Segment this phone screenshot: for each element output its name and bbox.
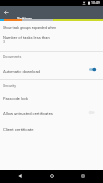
button[interactable]: Number of tasks less than bbox=[0, 32, 103, 51]
button[interactable]: Show task groups expanded when bbox=[0, 21, 103, 32]
staticText: Number of tasks less than bbox=[3, 35, 50, 40]
staticText: Client certificate bbox=[3, 127, 34, 132]
staticText: Security bbox=[3, 84, 16, 88]
staticText: 3 bbox=[3, 39, 6, 43]
staticText: Automatic download bbox=[3, 69, 40, 74]
staticText: Documents bbox=[3, 55, 22, 59]
staticText: Allow untrusted certificates bbox=[3, 111, 53, 116]
button[interactable]: Toggle bbox=[86, 65, 99, 74]
button[interactable]: Allow untrusted certificates bbox=[0, 107, 103, 122]
staticText: Show task groups expanded when bbox=[3, 26, 57, 30]
button[interactable]: Toggle bbox=[86, 108, 99, 117]
button[interactable]: Client certificate bbox=[0, 122, 103, 137]
button[interactable]: Back bbox=[0, 6, 13, 19]
button[interactable]: Passcode lock bbox=[0, 92, 103, 107]
button[interactable]: Automatic download bbox=[0, 65, 103, 79]
button[interactable]: Back bbox=[8, 170, 32, 183]
staticText: Settings bbox=[17, 16, 33, 21]
staticText: Passcode lock bbox=[3, 96, 28, 101]
button[interactable]: Home bbox=[40, 170, 64, 183]
staticText: 10:49 bbox=[91, 1, 100, 5]
button[interactable]: Recents bbox=[71, 170, 95, 183]
